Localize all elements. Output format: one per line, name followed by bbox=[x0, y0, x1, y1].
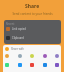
button[interactable]: App 3 bbox=[30, 63, 34, 67]
button[interactable]: App 4 bbox=[43, 63, 47, 67]
button[interactable]: Contact 4 bbox=[43, 54, 47, 58]
button[interactable]: App 5 bbox=[55, 63, 59, 67]
button[interactable]: Link copied bbox=[6, 27, 26, 31]
button[interactable]: Contact 2 bbox=[18, 54, 22, 58]
staticText: Clipboard bbox=[12, 36, 24, 40]
button[interactable]: Contact 3 bbox=[30, 54, 34, 58]
staticText: Send content to your friends bbox=[12, 12, 53, 16]
staticText: Share bbox=[25, 3, 40, 10]
button[interactable]: App 1 bbox=[5, 63, 9, 67]
button[interactable]: Clipboard bbox=[6, 36, 24, 40]
staticText: Share with bbox=[11, 47, 24, 51]
button[interactable]: Contact 5 bbox=[55, 54, 59, 58]
button[interactable]: Share with bbox=[5, 47, 24, 51]
button[interactable]: Contact 1 bbox=[5, 54, 9, 58]
staticText: Recent bbox=[6, 22, 15, 26]
button[interactable]: App 2 bbox=[18, 63, 22, 67]
staticText: Link copied bbox=[12, 27, 26, 31]
